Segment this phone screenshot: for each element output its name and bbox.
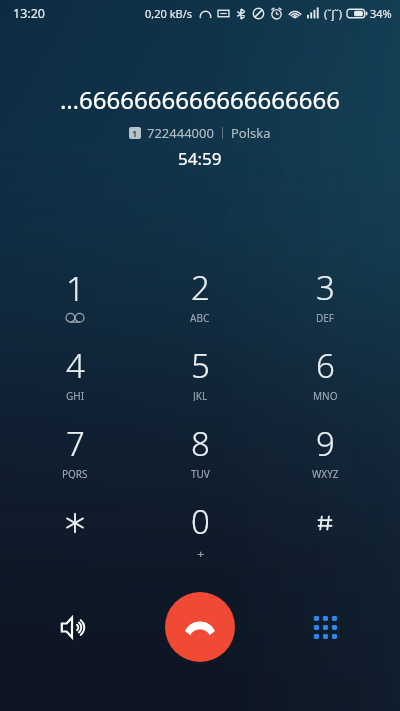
staticText: JKL	[193, 389, 208, 401]
button[interactable]: 7	[25, 421, 125, 479]
staticText: 6	[316, 343, 335, 388]
staticText: …6666666666666666666	[60, 83, 340, 116]
staticText: 4	[66, 343, 85, 388]
button[interactable]: 1	[25, 265, 125, 323]
staticText: 7	[66, 421, 85, 466]
staticText: MNO	[313, 389, 338, 401]
staticText: 0,20 kB/s	[145, 6, 193, 21]
button[interactable]	[275, 499, 375, 557]
staticText: 8	[191, 421, 210, 466]
button[interactable]: 9	[275, 421, 375, 479]
button[interactable]: 5	[150, 343, 250, 401]
staticText: 54:59	[178, 147, 222, 170]
staticText: 13:20	[13, 5, 45, 22]
staticText: 1	[66, 266, 85, 311]
staticText: Polska	[231, 124, 271, 142]
staticText: (˘ʃ˘)	[324, 6, 343, 21]
button[interactable]: 2	[150, 265, 250, 323]
button[interactable]: 4	[25, 343, 125, 401]
staticText: 5	[191, 343, 210, 388]
button[interactable]: 3	[275, 265, 375, 323]
staticText: 34%	[370, 6, 392, 21]
staticText: PQRS	[62, 467, 88, 479]
staticText: ABC	[190, 311, 210, 323]
button[interactable]	[25, 499, 125, 557]
staticText: TUV	[191, 467, 210, 479]
staticText: GHI	[66, 389, 85, 401]
staticText: 1	[132, 127, 138, 139]
staticText: +	[197, 545, 205, 557]
button[interactable]: Keypad	[300, 602, 350, 652]
button[interactable]: 6	[275, 343, 375, 401]
staticText: 722444000	[147, 124, 214, 142]
staticText: 3	[316, 265, 335, 310]
button[interactable]: 0	[150, 499, 250, 557]
staticText: 0	[191, 499, 210, 544]
button[interactable]: Speaker	[50, 602, 100, 652]
staticText: DEF	[316, 311, 335, 323]
staticText: 9	[316, 421, 335, 466]
button[interactable]: End call	[165, 592, 235, 662]
button[interactable]: 8	[150, 421, 250, 479]
staticText: WXYZ	[312, 467, 339, 479]
staticText: 2	[191, 265, 210, 310]
